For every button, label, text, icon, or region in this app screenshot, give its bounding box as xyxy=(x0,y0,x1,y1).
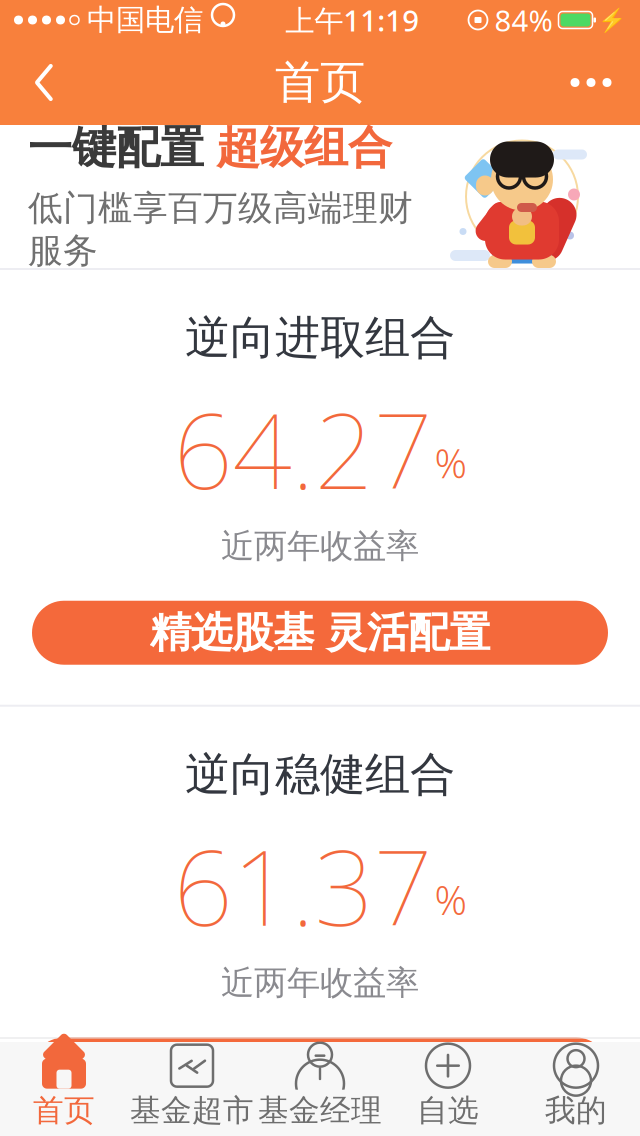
staticText: 自选 xyxy=(417,1092,479,1129)
staticText: 精选股基 灵活配置 xyxy=(150,607,490,658)
staticText: 基金经理 xyxy=(258,1092,382,1129)
button[interactable]: 返回 xyxy=(14,52,74,112)
staticText: 61.37 xyxy=(173,816,432,954)
button[interactable]: 一键配置 xyxy=(0,125,640,268)
button[interactable]: 自选 xyxy=(384,1038,512,1132)
button[interactable]: 基金超市 xyxy=(128,1038,256,1132)
staticText: % xyxy=(434,436,466,489)
staticText: 基金超市 xyxy=(130,1092,254,1129)
staticText: 近两年收益率 xyxy=(221,526,419,567)
button[interactable]: 首页 xyxy=(0,1038,128,1132)
staticText: 一键配置 xyxy=(28,121,204,175)
staticText: 逆向稳健组合 xyxy=(185,747,455,802)
staticText: 首页 xyxy=(33,1092,95,1129)
button[interactable]: 基金经理 xyxy=(256,1038,384,1132)
staticText: 逆向进取组合 xyxy=(185,310,455,366)
staticText: 首页 xyxy=(275,55,365,110)
staticText: % xyxy=(434,873,466,926)
staticText: 我的 xyxy=(545,1092,607,1129)
staticText: ⚡ xyxy=(598,7,626,33)
staticText: 近两年收益率 xyxy=(221,962,419,1003)
staticText: 低门槛享百万级高端理财服务 xyxy=(28,187,413,272)
button[interactable]: 我的 xyxy=(512,1038,640,1132)
staticText: 上午11:19 xyxy=(285,0,419,39)
staticText: 84% xyxy=(494,0,552,39)
staticText: 超级组合 xyxy=(216,121,392,175)
staticText: 中国电信 xyxy=(87,2,203,38)
button[interactable]: 更多 xyxy=(556,52,626,112)
staticText: 攻守平衡 股债结合 xyxy=(150,1044,490,1095)
staticText: 64.27 xyxy=(173,380,432,518)
button[interactable]: 攻守平衡 股债结合 xyxy=(32,1037,608,1101)
button[interactable]: 精选股基 灵活配置 xyxy=(32,601,608,665)
